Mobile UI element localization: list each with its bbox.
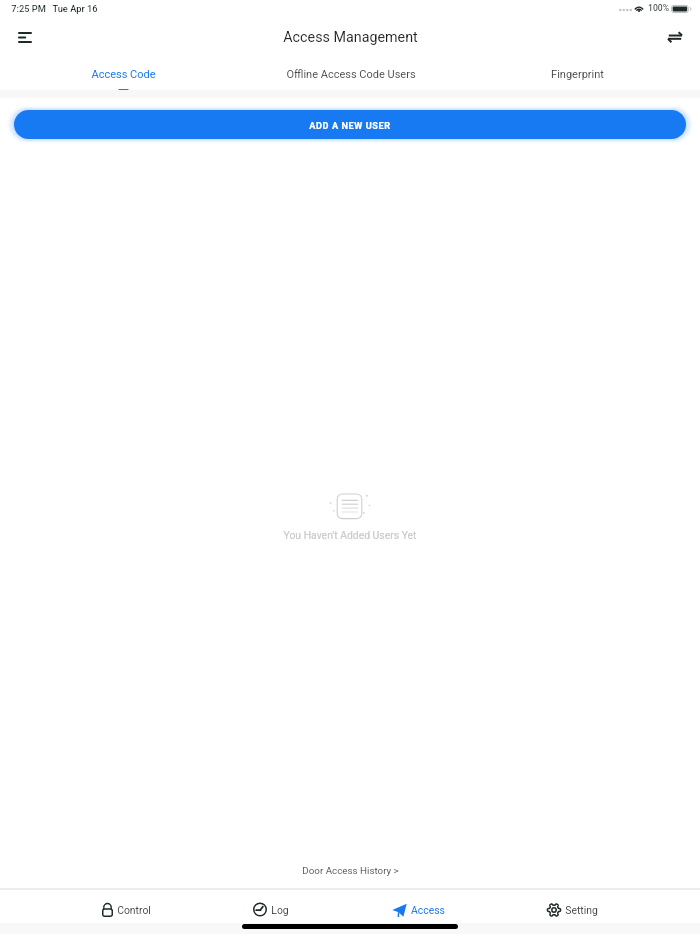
staticText: 7:25 PM: [11, 3, 46, 14]
button[interactable]: ADD A NEW USER: [14, 110, 686, 139]
button[interactable]: Setting: [547, 903, 598, 917]
staticText: Access Code: [91, 68, 156, 81]
button[interactable]: Control: [102, 903, 151, 917]
button[interactable]: Access: [392, 903, 445, 917]
button[interactable]: Offline Access Code Users: [237, 58, 464, 91]
button[interactable]: Log: [253, 902, 289, 917]
staticText: Offline Access Code Users: [286, 68, 416, 81]
staticText: Access: [411, 904, 445, 916]
button[interactable]: Access Code: [9, 58, 237, 91]
button[interactable]: Menu: [9, 22, 41, 54]
staticText: Fingerprint: [551, 68, 604, 81]
staticText: Setting: [565, 904, 598, 916]
button[interactable]: Fingerprint: [464, 58, 691, 91]
staticText: 100%: [648, 3, 669, 13]
button[interactable]: Door Access History >: [292, 862, 409, 879]
staticText: Door Access History >: [302, 865, 399, 876]
staticText: Control: [117, 904, 151, 916]
button[interactable]: Switch: [659, 22, 691, 54]
staticText: Log: [271, 904, 289, 916]
staticText: ADD A NEW USER: [309, 120, 391, 131]
staticText: You Haven't Added Users Yet: [0, 529, 700, 541]
staticText: Tue Apr 16: [52, 3, 98, 14]
staticText: Access Management: [283, 29, 418, 46]
